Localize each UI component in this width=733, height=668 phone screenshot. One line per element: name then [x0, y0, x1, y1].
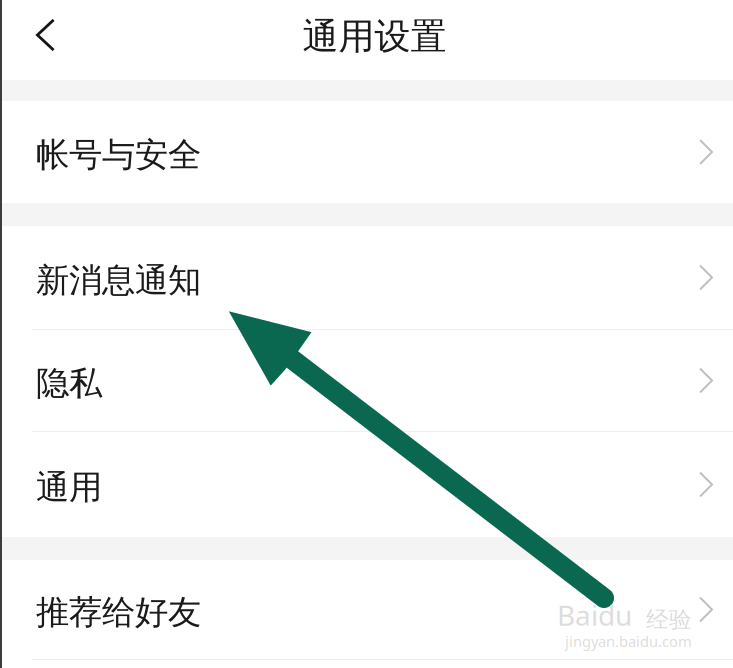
staticText: Baidu — [557, 596, 632, 633]
staticText: 帐号与安全 — [36, 134, 201, 175]
staticText: 新消息通知 — [36, 260, 201, 301]
staticText: 推荐给好友 — [36, 592, 201, 633]
staticText: 通用设置 — [302, 14, 446, 59]
button[interactable]: 通用 — [0, 432, 733, 537]
button[interactable]: Back — [0, 0, 67, 80]
button[interactable]: 帐号与安全 — [0, 101, 733, 203]
button[interactable]: 推荐给好友 — [0, 560, 733, 659]
button[interactable]: 新消息通知 — [0, 226, 733, 329]
staticText: 隐私 — [36, 363, 102, 404]
staticText: 通用 — [36, 467, 102, 508]
button[interactable]: 隐私 — [0, 330, 733, 431]
staticText: 经验 — [646, 606, 692, 633]
staticText: jingyan.baidu.com — [565, 631, 692, 651]
